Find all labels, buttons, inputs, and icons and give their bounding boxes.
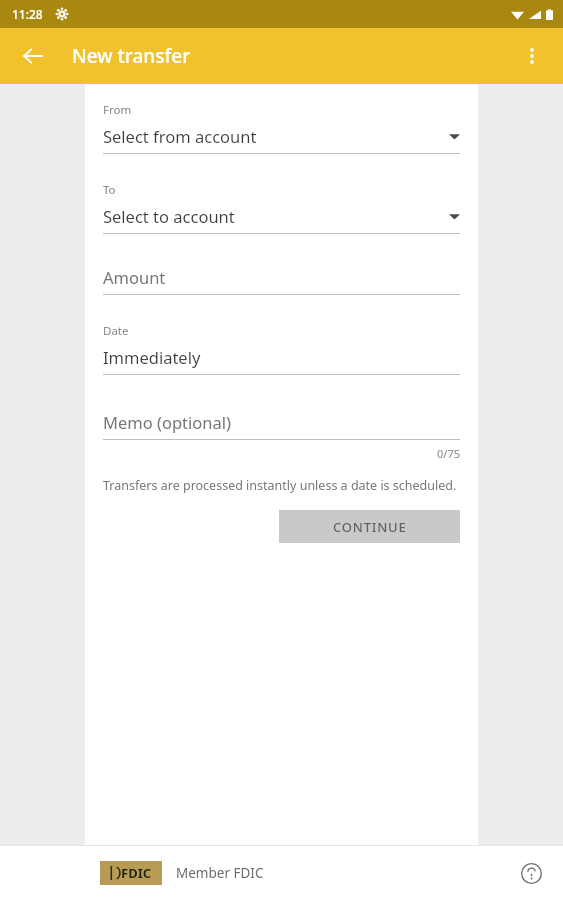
button[interactable]: To xyxy=(103,182,460,234)
staticText: Member FDIC xyxy=(176,864,515,882)
staticText: 11:28 xyxy=(12,6,43,22)
button[interactable]: Date xyxy=(103,323,460,375)
button[interactable]: Help xyxy=(515,857,547,889)
staticText: New transfer xyxy=(72,43,191,69)
button[interactable]: Back xyxy=(10,33,56,79)
button[interactable]: CONTINUE xyxy=(279,510,460,543)
staticText: Date xyxy=(103,323,129,339)
staticText: CONTINUE xyxy=(333,518,407,536)
staticText: Select from account xyxy=(103,125,449,147)
staticText: To xyxy=(103,182,116,198)
staticText: Amount xyxy=(103,266,166,288)
staticText: Immediately xyxy=(103,346,201,368)
button[interactable]: More options xyxy=(509,33,555,79)
staticText: Transfers are processed instantly unless… xyxy=(103,477,457,494)
button[interactable]: Memo (optional) xyxy=(103,411,460,440)
staticText: 0/75 xyxy=(103,446,460,461)
staticText: Memo (optional) xyxy=(103,411,231,433)
button[interactable]: Amount xyxy=(103,266,460,295)
staticText: FDIC xyxy=(121,864,152,882)
staticText: From xyxy=(103,102,132,118)
staticText: Select to account xyxy=(103,205,449,227)
button[interactable]: From xyxy=(103,102,460,154)
